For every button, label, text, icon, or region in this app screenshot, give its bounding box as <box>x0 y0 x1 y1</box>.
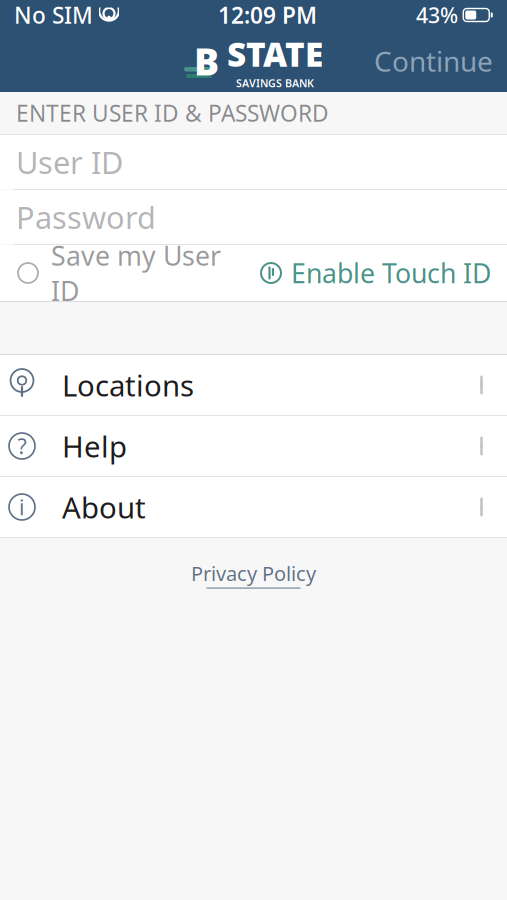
button[interactable]: i <box>0 477 507 538</box>
staticText: STATE <box>227 32 323 76</box>
button[interactable]: Password <box>0 190 507 245</box>
staticText: ENTER USER ID & PASSWORD <box>16 98 329 128</box>
button[interactable]: Continue <box>360 39 507 83</box>
staticText: Privacy Policy <box>191 560 316 587</box>
staticText: Save my User ID <box>51 238 221 308</box>
staticText: 12:09 PM <box>218 0 317 30</box>
staticText: Password <box>16 197 156 237</box>
staticText: i <box>19 493 25 521</box>
staticText: Enable Touch ID <box>291 255 491 291</box>
staticText: SAVINGS BANK <box>236 76 314 90</box>
button[interactable]: ? <box>0 416 507 477</box>
staticText: User ID <box>16 142 123 182</box>
button[interactable]: User ID <box>0 135 507 190</box>
staticText: Continue <box>374 42 493 80</box>
button[interactable]: Save my User ID <box>0 245 221 301</box>
staticText: Locations <box>62 365 194 404</box>
staticText: ? <box>17 432 26 460</box>
staticText: Help <box>62 426 127 465</box>
staticText: 43% <box>416 1 458 29</box>
button[interactable]: Locations <box>0 355 507 416</box>
staticText: No SIM <box>14 0 93 30</box>
staticText: About <box>62 487 146 526</box>
button[interactable]: Privacy Policy <box>191 538 316 597</box>
button[interactable]: Enable Touch ID <box>260 245 507 301</box>
staticText: B <box>194 36 219 86</box>
